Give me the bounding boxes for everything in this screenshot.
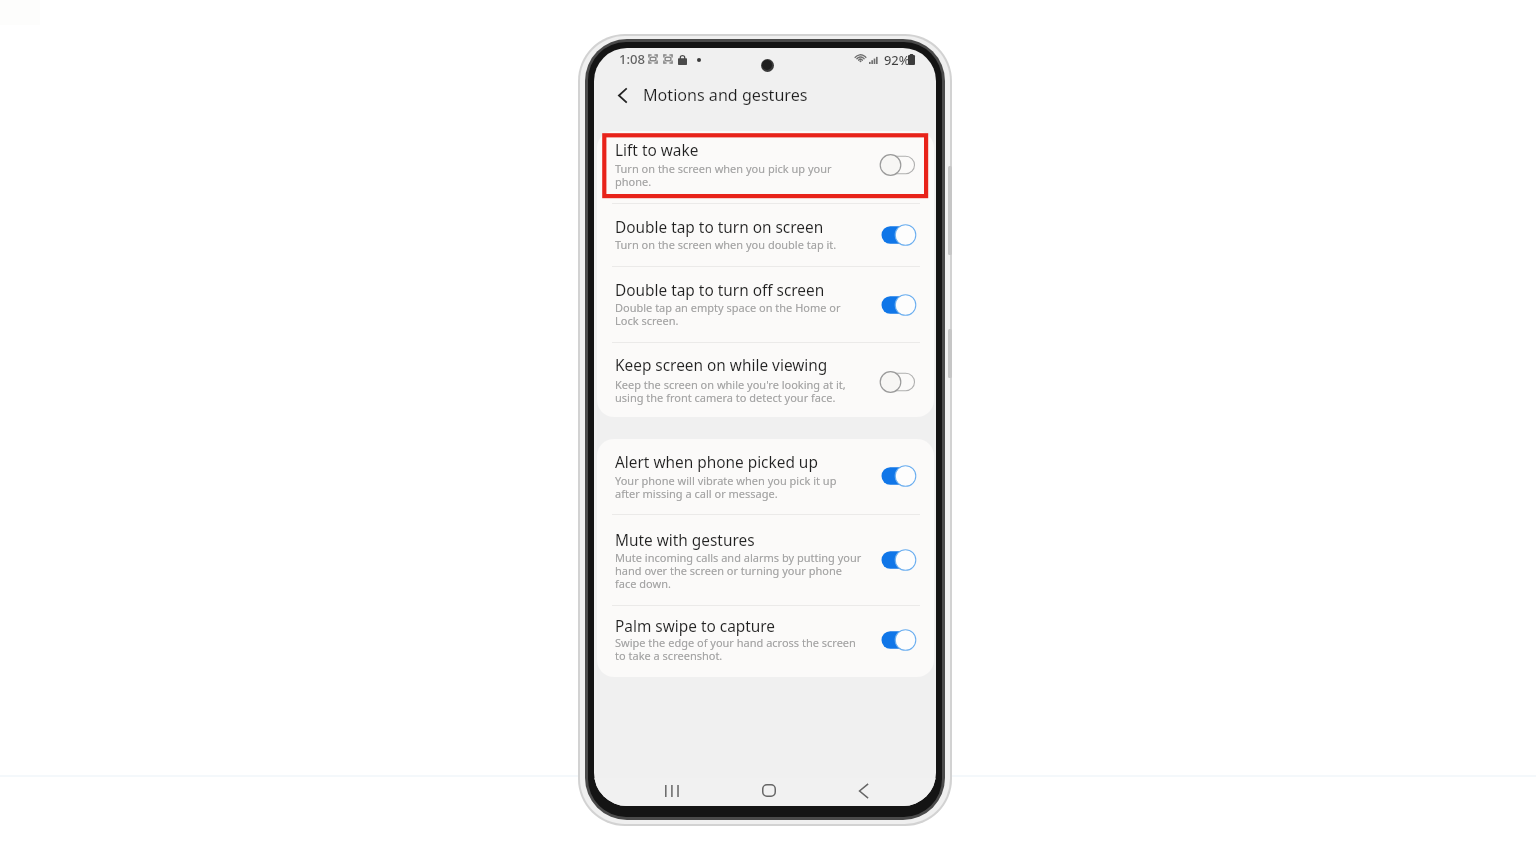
button[interactable]: Alert when phone picked up	[597, 439, 934, 514]
staticText: Turn on the screen when you double tap i…	[615, 237, 837, 252]
staticText: Keep screen on while viewing	[615, 355, 828, 376]
button[interactable]: Navigate up	[602, 75, 642, 115]
staticText: Alert when phone picked up	[615, 452, 818, 473]
button[interactable]: Palm swipe to capture	[597, 606, 934, 677]
staticText: Double tap an empty space on the Home or…	[615, 300, 841, 328]
staticText: Your phone will vibrate when you pick it…	[615, 473, 837, 501]
button[interactable]: Double tap to turn on screen	[597, 204, 934, 266]
button[interactable]: Switch, on	[877, 545, 919, 575]
button[interactable]: Switch, on	[877, 290, 919, 320]
button[interactable]: Keep screen on while viewing	[597, 343, 934, 417]
button[interactable]: Home	[746, 768, 791, 806]
button[interactable]: Recent apps	[649, 768, 694, 806]
staticText: 1:08	[619, 50, 646, 68]
button[interactable]: Switch, on	[877, 461, 919, 491]
staticText: Mute incoming calls and alarms by puttin…	[615, 550, 862, 591]
button[interactable]: Double tap to turn off screen	[597, 267, 934, 342]
button[interactable]: Switch, off	[877, 367, 919, 397]
staticText: Lift to wake	[615, 140, 699, 161]
staticText: Turn on the screen when you pick up your…	[615, 161, 832, 189]
button[interactable]: Back	[841, 768, 886, 806]
staticText: Swipe the edge of your hand across the s…	[615, 635, 856, 663]
button[interactable]: Switch, off	[877, 150, 919, 180]
button[interactable]: Switch, on	[877, 220, 919, 250]
staticText: Palm swipe to capture	[615, 616, 776, 637]
staticText: Double tap to turn off screen	[615, 280, 825, 301]
button[interactable]: Lift to wake	[597, 131, 934, 203]
staticText: Double tap to turn on screen	[615, 217, 824, 238]
staticText: 92%	[884, 51, 910, 69]
staticText: Keep the screen on while you're looking …	[615, 377, 846, 405]
staticText: Mute with gestures	[615, 530, 755, 551]
button[interactable]: Switch, on	[877, 625, 919, 655]
staticText: Motions and gestures	[643, 84, 808, 106]
button[interactable]: Mute with gestures	[597, 515, 934, 605]
